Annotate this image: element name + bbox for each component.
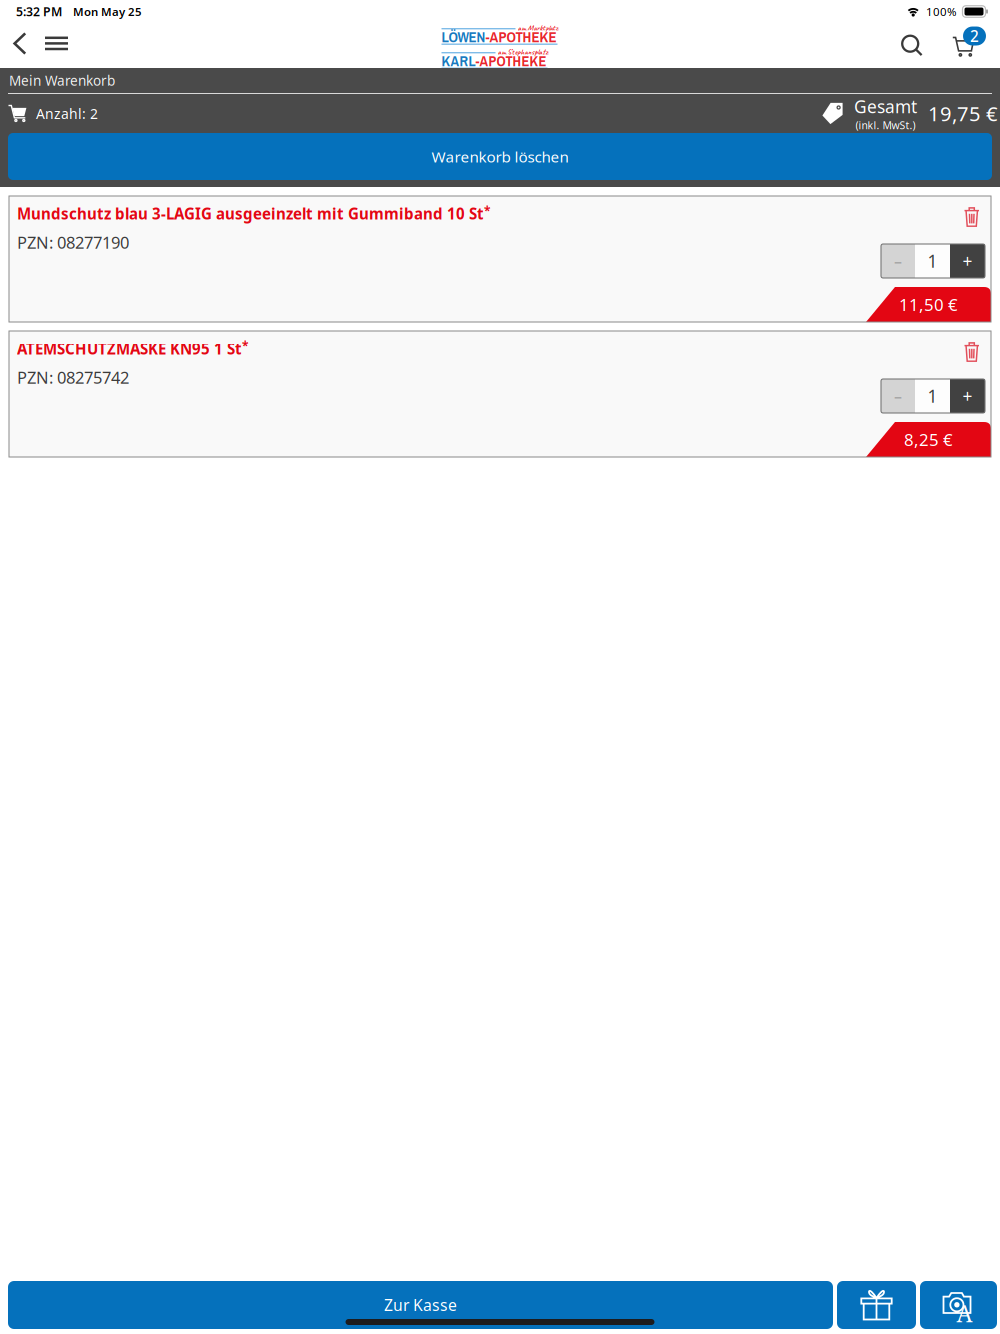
staticText: Gesamt xyxy=(854,95,917,118)
button[interactable]: Menge verringern xyxy=(881,379,915,413)
button[interactable]: Menü xyxy=(38,28,75,62)
staticText: 11,50 € xyxy=(899,293,958,316)
staticText: LÖWEN xyxy=(441,27,485,47)
staticText: A xyxy=(956,1298,972,1329)
button[interactable]: Zurück xyxy=(8,29,33,62)
button[interactable]: Zur Kasse xyxy=(8,1281,833,1329)
staticText: 19,75 € xyxy=(928,100,998,127)
staticText: Anzahl: 2 xyxy=(36,104,98,123)
staticText: – xyxy=(894,385,902,407)
staticText: am Marktplatz xyxy=(517,23,557,33)
staticText: + xyxy=(962,384,972,408)
staticText: KARL xyxy=(441,51,475,71)
staticText: + xyxy=(962,249,972,273)
staticText: 1 xyxy=(927,384,937,408)
button[interactable]: Menge erhöhen xyxy=(950,379,985,413)
button[interactable]: Menge verringern xyxy=(881,244,915,278)
staticText: Warenkorb löschen xyxy=(431,146,568,167)
staticText: 100% xyxy=(926,4,957,19)
button[interactable]: Suche xyxy=(895,31,929,59)
staticText: -APOTHEKE xyxy=(475,51,546,71)
staticText: 1 xyxy=(927,249,937,273)
staticText: Zur Kasse xyxy=(384,1294,457,1316)
button[interactable]: Menge erhöhen xyxy=(950,244,985,278)
staticText: – xyxy=(894,250,902,272)
button[interactable]: Artikel löschen xyxy=(958,196,991,233)
staticText: 8,25 € xyxy=(904,428,953,451)
staticText: Mundschutz blau 3-LAGIG ausgeeinzelt mit… xyxy=(17,203,491,224)
staticText: 5:32 PM xyxy=(16,3,62,20)
staticText: 2 xyxy=(970,26,979,46)
staticText: PZN: 08277190 xyxy=(17,231,129,253)
staticText: PZN: 08275742 xyxy=(17,366,129,388)
staticText: am Stephansplatz xyxy=(497,47,547,57)
button[interactable]: Warenkorb xyxy=(943,26,986,64)
button[interactable]: Warenkorb löschen xyxy=(8,133,992,180)
staticText: -APOTHEKE xyxy=(485,27,556,47)
staticText: Mein Warenkorb xyxy=(9,71,115,90)
staticText: ATEMSCHUTZMASKE KN95 1 St* xyxy=(17,338,249,359)
button[interactable]: Geschenkgutschein xyxy=(837,1281,916,1329)
staticText: (inkl. MwSt.) xyxy=(855,118,915,132)
button[interactable]: Artikel löschen xyxy=(958,331,991,368)
staticText: Mon May 25 xyxy=(73,4,142,19)
button[interactable]: Rezept scannen xyxy=(920,1281,997,1329)
